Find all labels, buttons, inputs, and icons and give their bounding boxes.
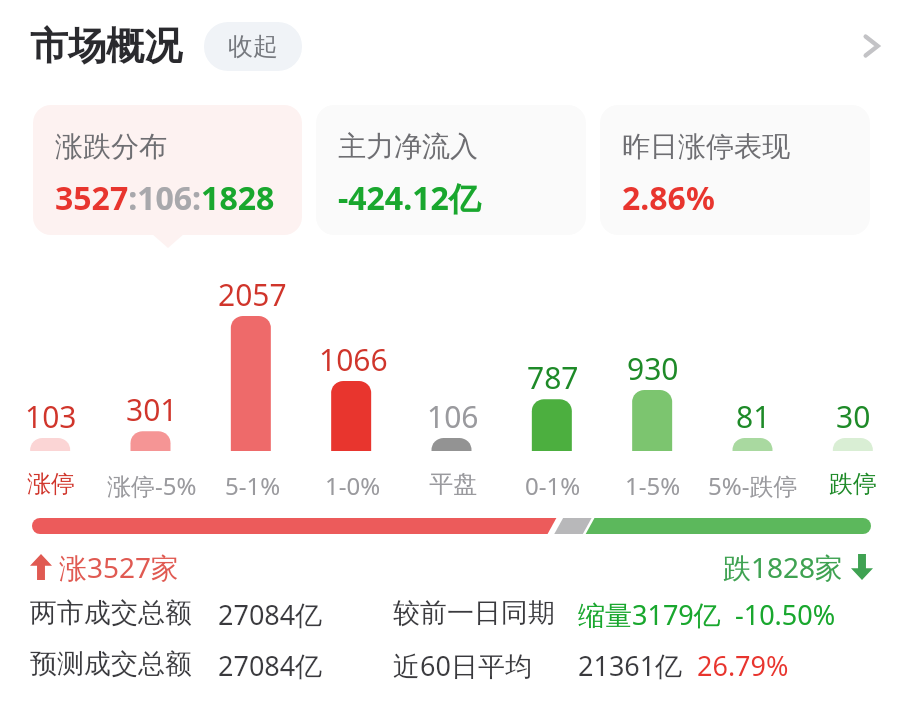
staticText: 3527:106:1828	[55, 176, 275, 220]
staticText: 1-0%	[325, 469, 381, 502]
staticText: 涨停	[27, 469, 75, 499]
staticText: 5%-跌停	[708, 469, 798, 502]
staticText: 21361亿	[578, 647, 683, 684]
staticText: -424.12亿	[338, 176, 481, 220]
button[interactable]: 昨日涨停表现	[600, 105, 870, 235]
staticText: 103	[25, 396, 77, 437]
staticText: 预测成交总额	[30, 647, 192, 681]
staticText: 较前一日同期	[393, 596, 555, 630]
staticText: 昨日涨停表现	[622, 129, 790, 164]
staticText: 106	[427, 396, 479, 437]
staticText: 2057	[218, 274, 287, 315]
staticText: 5-1%	[225, 469, 281, 502]
staticText: 市场概况	[30, 22, 182, 70]
staticText: -10.50%	[735, 596, 836, 633]
staticText: 收起	[228, 31, 278, 62]
staticText: 30	[836, 396, 871, 437]
staticText: 27084亿	[218, 647, 323, 684]
staticText: 81	[736, 396, 771, 437]
staticText: 1-5%	[625, 469, 681, 502]
staticText: 两市成交总额	[30, 596, 192, 630]
staticText: 主力净流入	[338, 129, 478, 164]
button[interactable]: 收起	[204, 22, 302, 71]
staticText: 涨3527家	[59, 548, 180, 586]
staticText: 涨停-5%	[107, 469, 197, 502]
staticText: 缩量3179亿	[578, 596, 721, 633]
staticText: 27084亿	[218, 596, 323, 633]
staticText: 2.86%	[622, 176, 715, 220]
staticText: 26.79%	[697, 647, 789, 684]
button[interactable]: 主力净流入	[316, 105, 586, 235]
button[interactable]: 涨跌分布	[33, 105, 302, 235]
staticText: 跌1828家	[723, 548, 844, 586]
button[interactable]: More	[839, 14, 903, 78]
staticText: 涨跌分布	[55, 129, 167, 164]
staticText: 1066	[319, 339, 388, 380]
staticText: 平盘	[429, 469, 477, 499]
staticText: 930	[627, 348, 679, 389]
staticText: 787	[527, 357, 579, 398]
staticText: 近60日平均	[393, 647, 532, 684]
staticText: 0-1%	[525, 469, 581, 502]
staticText: 跌停	[829, 469, 877, 499]
staticText: 301	[126, 389, 178, 430]
